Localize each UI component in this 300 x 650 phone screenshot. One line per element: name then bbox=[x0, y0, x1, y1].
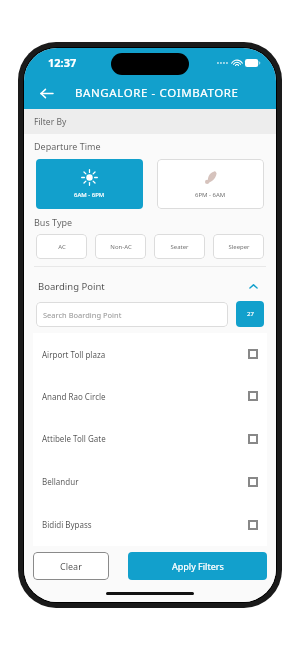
staticText: Departure Time bbox=[34, 140, 101, 152]
staticText: BANGALORE - COIMBATORE bbox=[75, 85, 239, 101]
staticText: Filter By bbox=[34, 116, 67, 128]
button[interactable]: 6PM - 6AM bbox=[157, 159, 264, 209]
button[interactable]: 6AM - 6PM bbox=[36, 159, 143, 209]
button[interactable]: AC bbox=[36, 234, 87, 259]
staticText: Airport Toll plaza bbox=[42, 349, 106, 360]
staticText: Seater bbox=[170, 243, 189, 251]
button[interactable]: Seater bbox=[154, 234, 205, 259]
button[interactable]: Clear bbox=[33, 552, 109, 580]
staticText: Clear bbox=[60, 560, 82, 572]
button[interactable]: Attibele Toll Gate bbox=[33, 417, 267, 460]
button[interactable]: Sleeper bbox=[213, 234, 264, 259]
button[interactable]: Search Boarding Point bbox=[36, 302, 228, 327]
button[interactable]: Anand Rao Circle bbox=[33, 375, 267, 417]
staticText: Boarding Point bbox=[38, 280, 105, 293]
staticText: Sleeper bbox=[228, 243, 250, 251]
staticText: Bus Type bbox=[34, 216, 73, 228]
button[interactable]: Back bbox=[34, 81, 58, 105]
button[interactable]: Apply Filters bbox=[128, 552, 267, 580]
button[interactable]: Collapse boarding point bbox=[244, 277, 262, 295]
staticText: Non-AC bbox=[110, 243, 132, 251]
staticText: 12:37 bbox=[48, 55, 77, 70]
staticText: Bellandur bbox=[42, 476, 79, 487]
staticText: Anand Rao Circle bbox=[42, 391, 106, 402]
button[interactable]: Airport Toll plaza bbox=[33, 333, 267, 375]
button[interactable]: 27 bbox=[236, 301, 264, 327]
staticText: 6AM - 6PM bbox=[74, 191, 105, 199]
button[interactable]: Non-AC bbox=[95, 234, 146, 259]
staticText: Apply Filters bbox=[172, 560, 224, 572]
staticText: Bididi Bypass bbox=[42, 519, 92, 530]
button[interactable]: Bellandur bbox=[33, 460, 267, 503]
staticText: Attibele Toll Gate bbox=[42, 433, 106, 444]
staticText: Search Boarding Point bbox=[43, 310, 122, 320]
button[interactable]: Bididi Bypass bbox=[33, 503, 267, 546]
staticText: AC bbox=[58, 243, 66, 251]
staticText: 6PM - 6AM bbox=[195, 191, 226, 199]
staticText: 27 bbox=[247, 310, 254, 318]
